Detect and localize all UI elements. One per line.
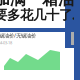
staticText: 2024-03-18: [0, 40, 12, 45]
staticText: 要多花几十了…: [0, 6, 80, 23]
staticText: 无锡油价/无锡油价: [0, 32, 36, 39]
staticText: 加满一箱油: [0, 0, 74, 9]
